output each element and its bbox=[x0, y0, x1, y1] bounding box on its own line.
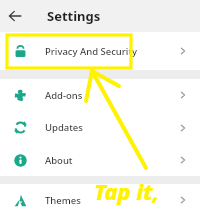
button[interactable]: Themes bbox=[0, 184, 200, 216]
staticText: Themes bbox=[45, 194, 81, 207]
staticText: Tap it, bbox=[94, 176, 160, 206]
staticText: About bbox=[45, 154, 73, 167]
button[interactable]: Updates bbox=[0, 111, 200, 144]
button[interactable]: Add-ons bbox=[0, 79, 200, 111]
staticText: Settings bbox=[47, 7, 101, 25]
button[interactable]: Privacy And Security bbox=[0, 32, 200, 70]
staticText: Privacy And Security bbox=[45, 45, 138, 58]
button[interactable]: About bbox=[0, 144, 200, 176]
button[interactable]: Back bbox=[0, 1, 30, 31]
staticText: Add-ons bbox=[45, 89, 83, 102]
staticText: Updates bbox=[45, 121, 83, 134]
